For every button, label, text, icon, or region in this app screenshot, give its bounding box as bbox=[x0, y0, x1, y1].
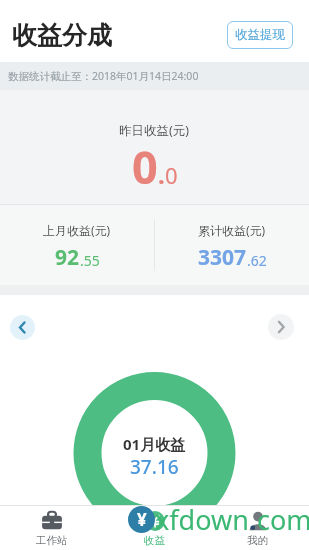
staticText: 上月收益(元) bbox=[43, 222, 111, 238]
staticText: . bbox=[249, 501, 257, 538]
staticText: 3307 bbox=[198, 243, 247, 272]
staticText: 0 bbox=[165, 160, 178, 190]
staticText: 昨日收益(元) bbox=[119, 122, 190, 139]
staticText: .62 bbox=[247, 251, 267, 270]
button[interactable] bbox=[268, 314, 294, 340]
staticText: xfdown bbox=[155, 501, 249, 538]
button[interactable] bbox=[10, 315, 35, 340]
staticText: 累计收益(元) bbox=[198, 222, 266, 238]
staticText: com bbox=[257, 501, 309, 538]
button[interactable]: 工作站 bbox=[0, 505, 103, 550]
staticText: . bbox=[158, 158, 165, 191]
staticText: 92 bbox=[55, 243, 80, 272]
staticText: 收益 bbox=[144, 534, 165, 547]
staticText: 收益提现 bbox=[235, 27, 285, 43]
staticText: ¥ bbox=[137, 508, 147, 531]
staticText: 01月收益 bbox=[123, 434, 186, 454]
staticText: 工作站 bbox=[36, 534, 68, 547]
button[interactable]: 收益提现 bbox=[227, 21, 293, 49]
staticText: .55 bbox=[80, 251, 100, 270]
staticText: 0 bbox=[132, 136, 158, 197]
staticText: 收益分成 bbox=[12, 20, 112, 51]
button[interactable]: 我的 bbox=[206, 505, 309, 550]
button[interactable]: 收益 bbox=[103, 505, 206, 550]
staticText: 我的 bbox=[247, 534, 268, 547]
staticText: 37.16 bbox=[130, 454, 179, 480]
staticText: 数据统计截止至：2018年01月14日24:00 bbox=[8, 69, 199, 83]
